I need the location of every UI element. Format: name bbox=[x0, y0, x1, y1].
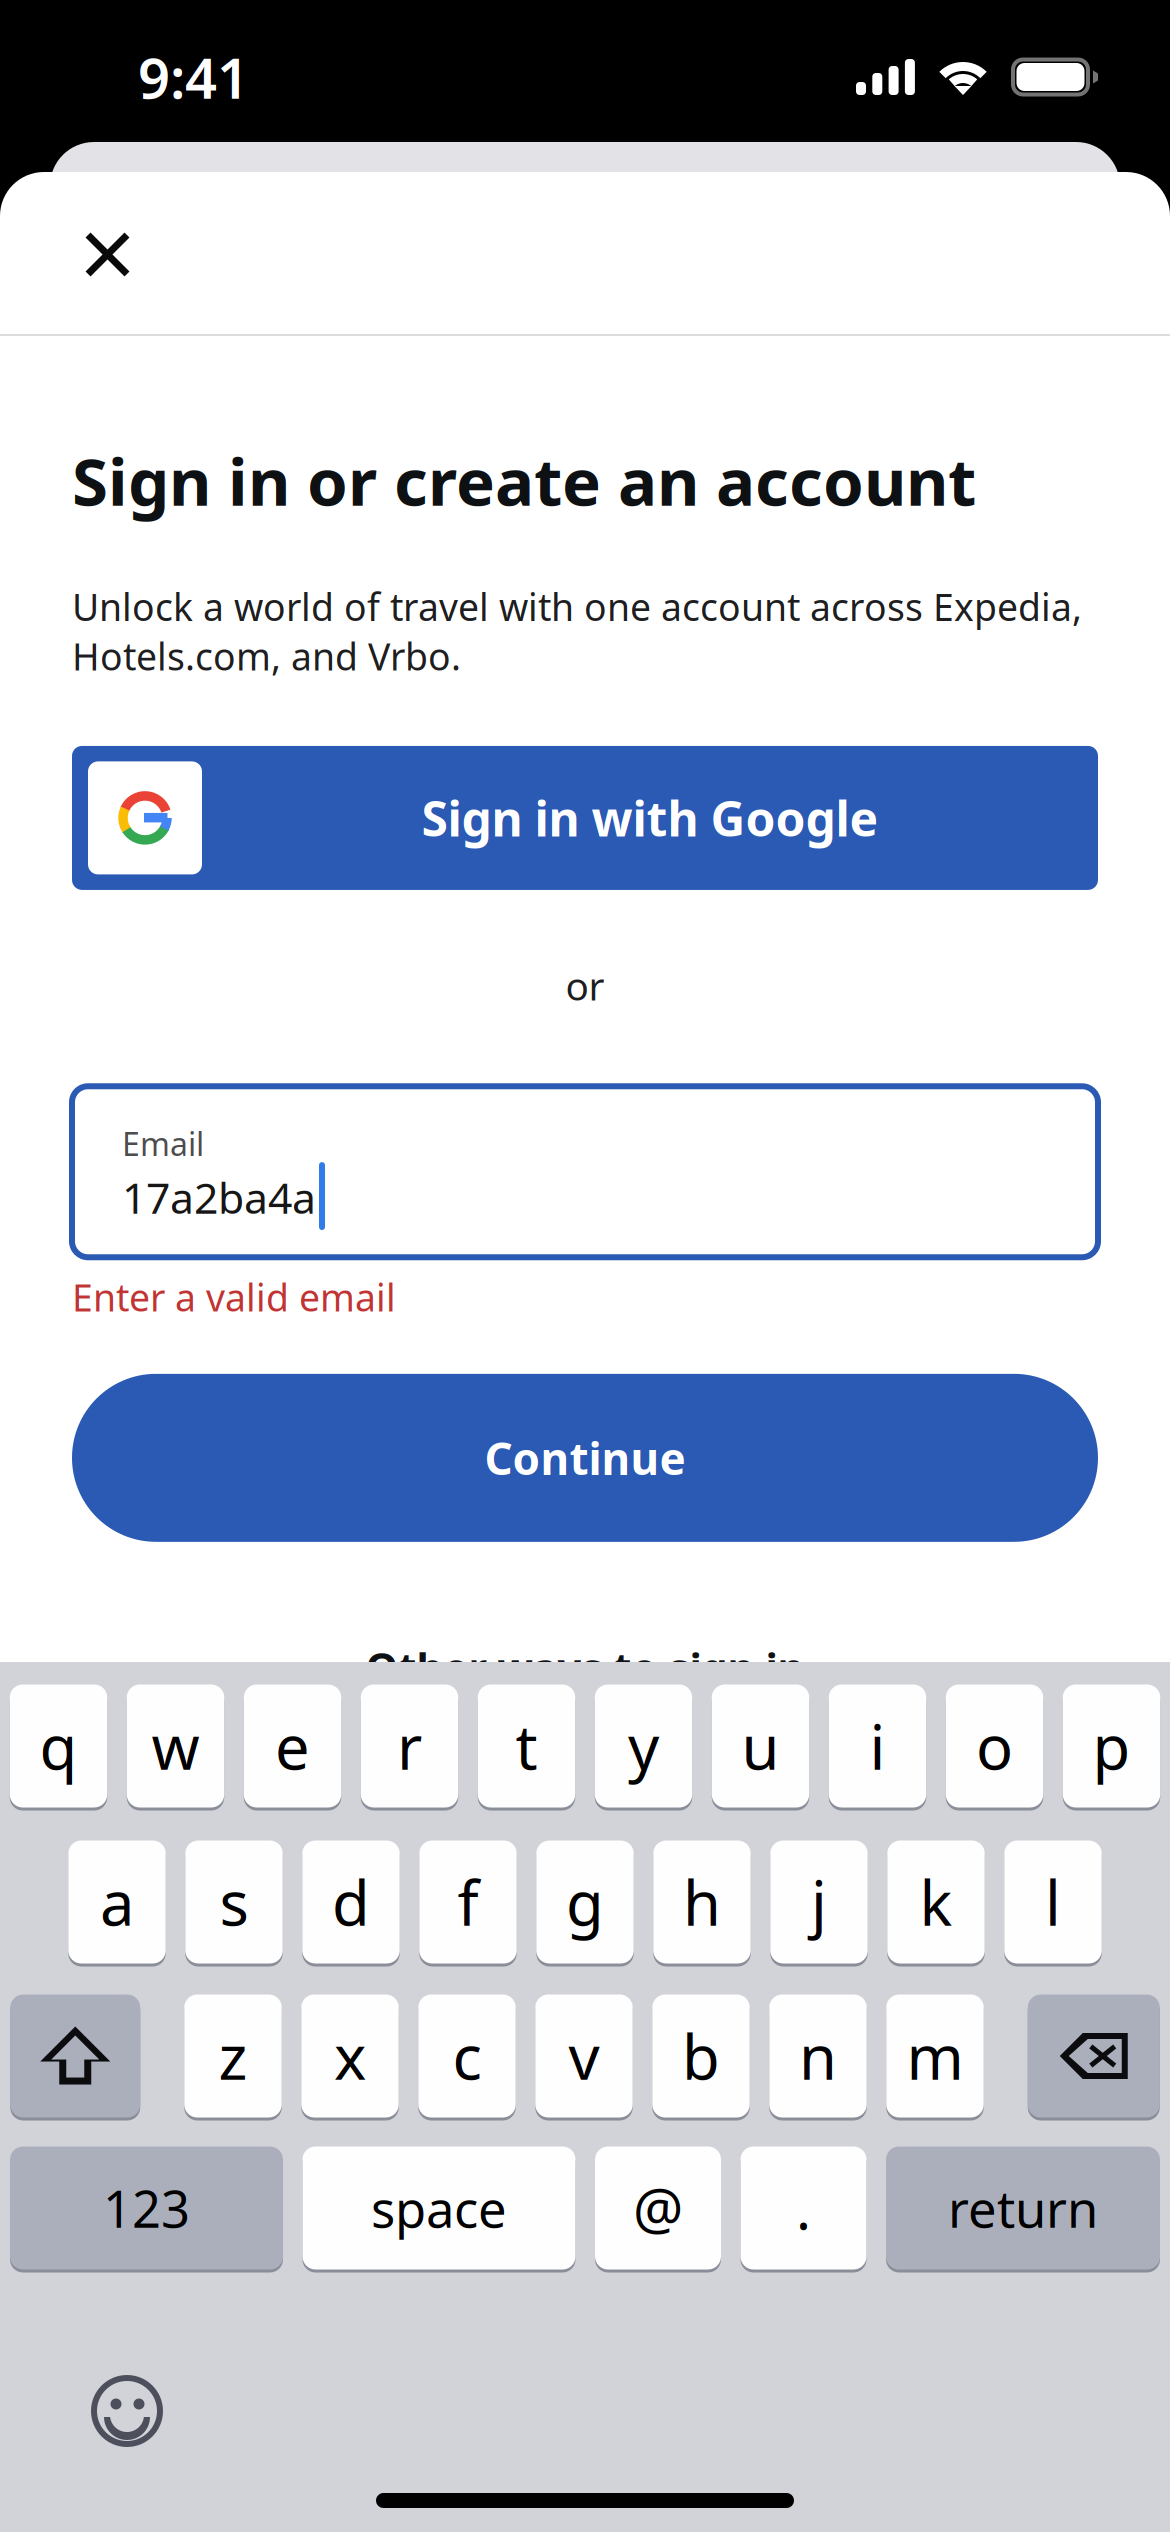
staticText: Other ways to sign in bbox=[365, 1640, 804, 1695]
button[interactable]: @ bbox=[595, 2145, 721, 2271]
button[interactable]: . bbox=[740, 2145, 866, 2271]
button[interactable]: x bbox=[301, 1993, 399, 2119]
staticText: Email bbox=[122, 1122, 204, 1165]
button[interactable]: k bbox=[887, 1839, 985, 1965]
button[interactable]: u bbox=[712, 1683, 809, 1809]
staticText: t bbox=[515, 1705, 537, 1787]
staticText: b bbox=[682, 2015, 720, 2097]
staticText: 9:41 bbox=[138, 40, 249, 114]
staticText: 17a2ba4a bbox=[122, 1169, 316, 1225]
button[interactable]: w bbox=[127, 1683, 224, 1809]
staticText: Enter a valid email bbox=[72, 1272, 396, 1322]
staticText: Unlock a world of travel with one accoun… bbox=[72, 582, 1082, 681]
staticText: 123 bbox=[103, 2174, 190, 2242]
staticText: j bbox=[811, 1861, 827, 1943]
staticText: g bbox=[566, 1861, 604, 1943]
button[interactable]: return bbox=[886, 2145, 1160, 2271]
staticText: w bbox=[151, 1705, 199, 1787]
button[interactable]: m bbox=[886, 1993, 984, 2119]
button[interactable]: f bbox=[419, 1839, 517, 1965]
button[interactable]: Emoji keyboard bbox=[0, 2350, 210, 2472]
staticText: d bbox=[332, 1861, 370, 1943]
staticText: o bbox=[976, 1705, 1013, 1787]
button[interactable]: e bbox=[244, 1683, 341, 1809]
button[interactable]: n bbox=[769, 1993, 867, 2119]
staticText: s bbox=[219, 1861, 248, 1943]
button[interactable]: j bbox=[770, 1839, 868, 1965]
staticText: . bbox=[796, 2171, 811, 2245]
staticText: z bbox=[218, 2015, 247, 2097]
button[interactable]: y bbox=[595, 1683, 692, 1809]
button[interactable]: 123 bbox=[10, 2145, 283, 2271]
staticText: x bbox=[334, 2015, 366, 2097]
button[interactable]: Sign in with Google bbox=[72, 746, 1098, 890]
button[interactable]: t bbox=[478, 1683, 575, 1809]
staticText: m bbox=[906, 2015, 963, 2097]
staticText: q bbox=[39, 1705, 77, 1787]
staticText: or bbox=[565, 960, 604, 1011]
staticText: f bbox=[457, 1861, 478, 1943]
button[interactable]: l bbox=[1004, 1839, 1102, 1965]
staticText: u bbox=[741, 1705, 779, 1787]
button[interactable]: h bbox=[653, 1839, 751, 1965]
button[interactable]: v bbox=[535, 1993, 633, 2119]
staticText: c bbox=[452, 2015, 481, 2097]
button[interactable]: Close bbox=[0, 172, 172, 334]
button[interactable]: c bbox=[418, 1993, 516, 2119]
staticText: y bbox=[628, 1705, 659, 1787]
staticText: l bbox=[1045, 1861, 1061, 1943]
button[interactable]: Shift bbox=[10, 1993, 140, 2119]
button[interactable]: q bbox=[10, 1683, 107, 1809]
staticText: k bbox=[919, 1861, 952, 1943]
button[interactable]: a bbox=[68, 1839, 166, 1965]
staticText: r bbox=[397, 1705, 422, 1787]
staticText: Continue bbox=[484, 1429, 685, 1487]
button[interactable]: Delete bbox=[1028, 1993, 1160, 2119]
button[interactable]: space bbox=[302, 2145, 575, 2271]
button[interactable]: Continue bbox=[72, 1374, 1098, 1542]
staticText: Sign in or create an account bbox=[72, 437, 976, 524]
button[interactable]: Email bbox=[72, 1086, 1098, 1257]
button[interactable]: p bbox=[1063, 1683, 1160, 1809]
button[interactable]: i bbox=[829, 1683, 926, 1809]
staticText: v bbox=[568, 2015, 599, 2097]
button[interactable]: g bbox=[536, 1839, 634, 1965]
staticText: h bbox=[683, 1861, 721, 1943]
button[interactable]: r bbox=[361, 1683, 458, 1809]
staticText: return bbox=[948, 2174, 1098, 2242]
staticText: @ bbox=[633, 2171, 683, 2245]
staticText: e bbox=[275, 1705, 310, 1787]
staticText: i bbox=[869, 1705, 885, 1787]
staticText: a bbox=[100, 1861, 134, 1943]
staticText: p bbox=[1092, 1705, 1130, 1787]
button[interactable]: s bbox=[185, 1839, 283, 1965]
button[interactable]: b bbox=[652, 1993, 750, 2119]
button[interactable]: o bbox=[946, 1683, 1043, 1809]
staticText: Sign in with Google bbox=[421, 786, 878, 850]
staticText: space bbox=[371, 2174, 507, 2242]
staticText: n bbox=[799, 2015, 837, 2097]
button[interactable]: d bbox=[302, 1839, 400, 1965]
button[interactable]: z bbox=[184, 1993, 282, 2119]
